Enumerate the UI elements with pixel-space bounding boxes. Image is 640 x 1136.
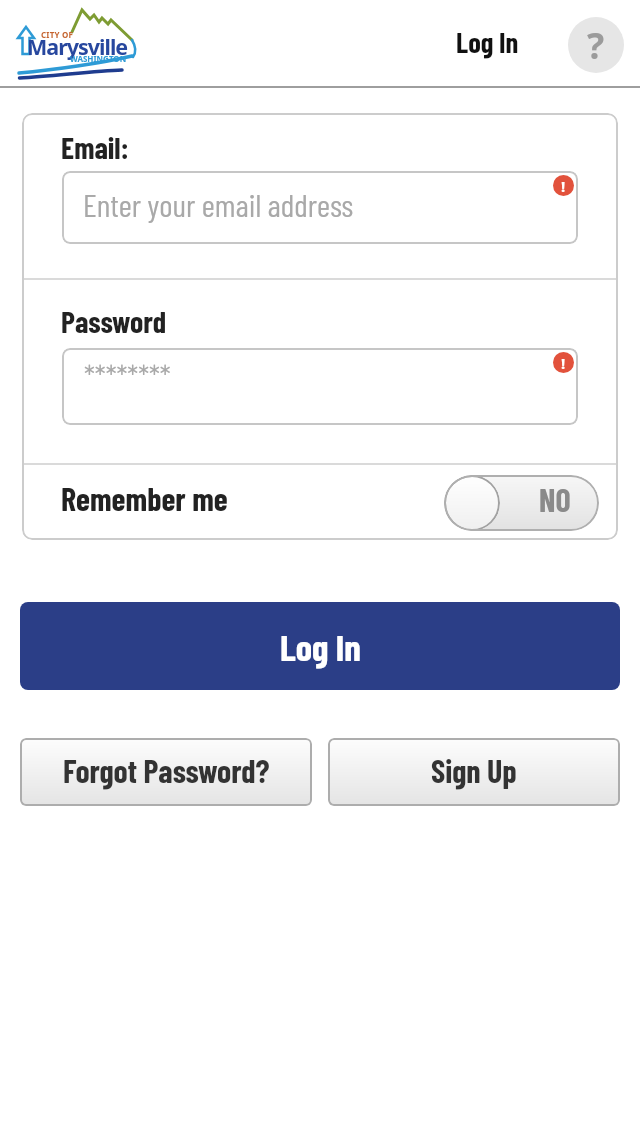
button[interactable]: NO: [444, 475, 599, 531]
staticText: Forgot Password?: [63, 751, 270, 789]
staticText: Marysville: [27, 32, 128, 61]
staticText: CITY OF: [41, 29, 74, 40]
staticText: Log In: [280, 624, 361, 668]
button[interactable]: ********: [62, 348, 578, 425]
staticText: !: [561, 353, 566, 373]
staticText: Password: [61, 303, 167, 339]
staticText: Sign Up: [431, 751, 517, 789]
button[interactable]: Enter your email address: [62, 171, 578, 244]
staticText: WASHINGTON: [70, 53, 127, 64]
staticText: ?: [587, 21, 605, 70]
staticText: Remember me: [61, 479, 228, 517]
button[interactable]: Sign Up: [328, 738, 620, 806]
staticText: ********: [84, 357, 171, 393]
button[interactable]: ?: [568, 17, 624, 73]
button[interactable]: Forgot Password?: [20, 738, 312, 806]
staticText: Log In: [456, 24, 519, 58]
staticText: NO: [539, 480, 571, 518]
button[interactable]: Log In: [20, 602, 620, 690]
staticText: Email:: [61, 129, 129, 165]
staticText: !: [561, 176, 566, 196]
staticText: Enter your email address: [83, 185, 354, 223]
